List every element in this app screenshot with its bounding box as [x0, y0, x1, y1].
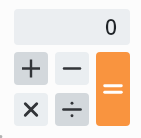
button[interactable]: Equals: [96, 52, 130, 126]
button[interactable]: Minus: [55, 52, 89, 85]
button[interactable]: Plus: [14, 52, 48, 85]
button[interactable]: Multiply: [14, 93, 48, 126]
button[interactable]: Divide: [55, 93, 89, 126]
button[interactable]: 0: [14, 9, 130, 45]
staticText: 0: [104, 13, 117, 42]
